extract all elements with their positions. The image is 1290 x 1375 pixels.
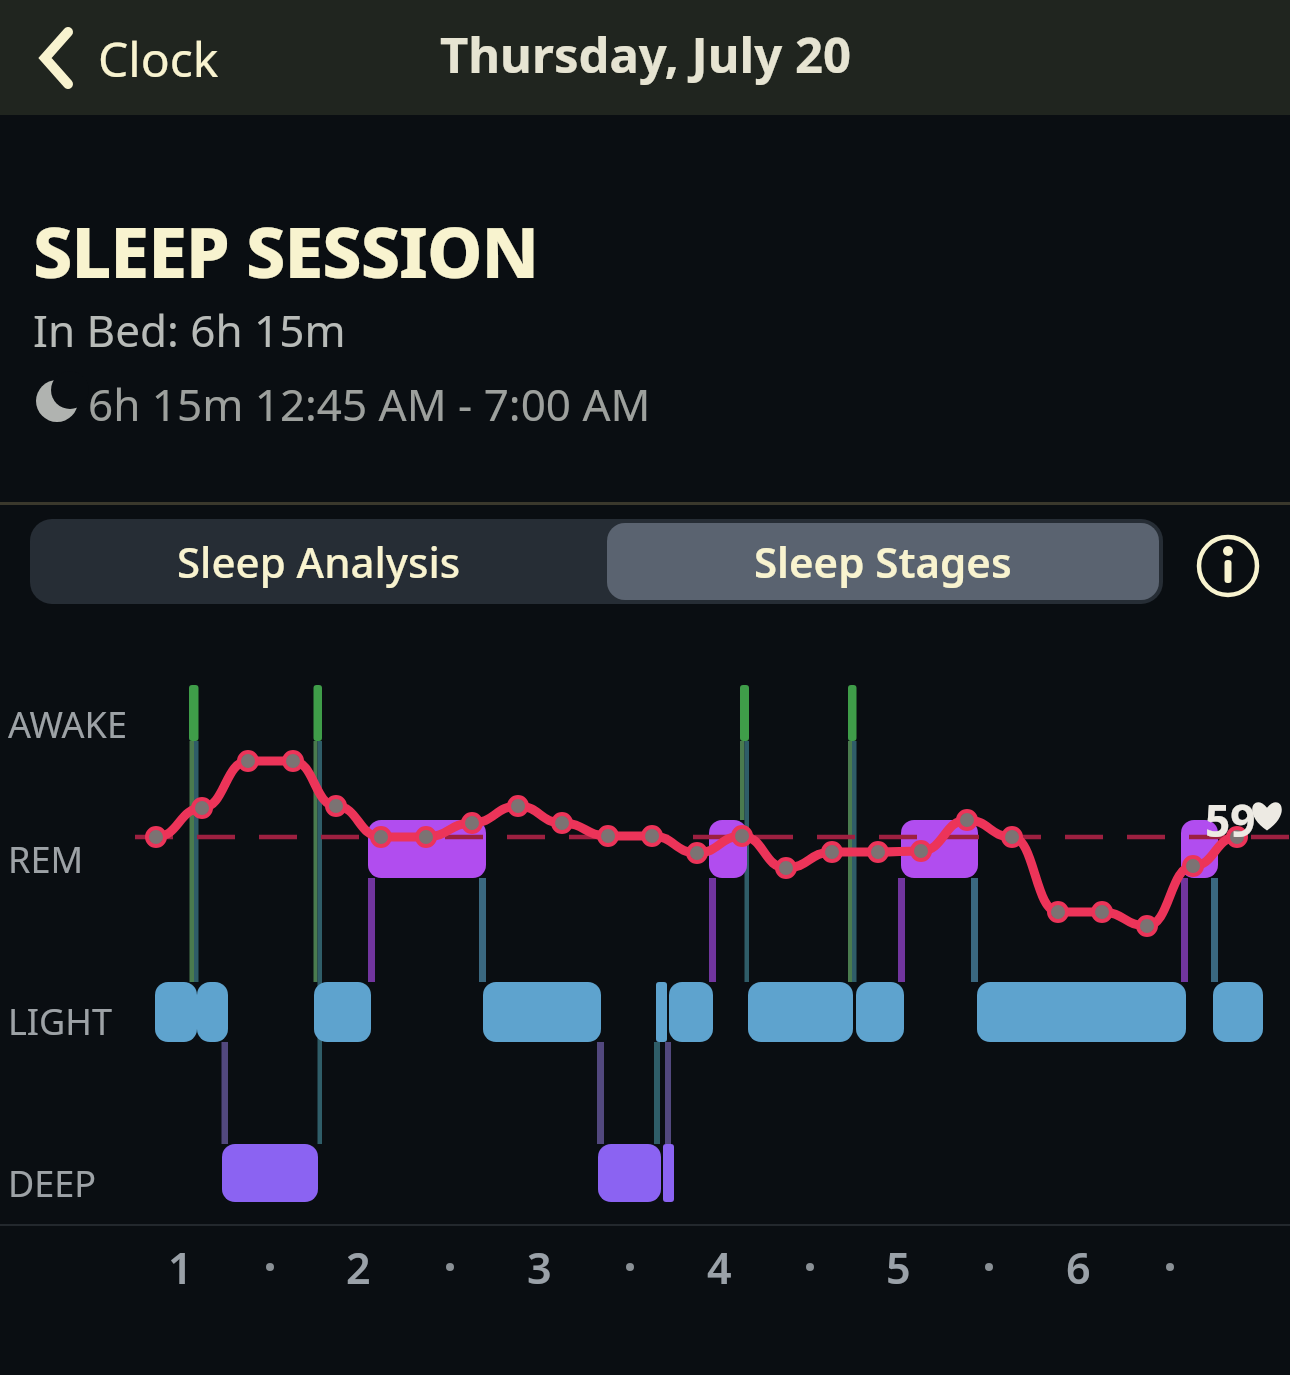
staticText: LIGHT — [8, 997, 112, 1046]
staticText: 5 — [886, 1238, 911, 1297]
staticText: REM — [8, 835, 84, 884]
staticText: 2 — [346, 1238, 371, 1297]
staticText: In Bed: 6h 15m — [33, 300, 346, 360]
staticText: Sleep Stages — [754, 533, 1012, 590]
button[interactable]: Sleep Analysis — [30, 519, 607, 604]
staticText: AWAKE — [8, 700, 127, 749]
staticText: Thursday, July 20 — [440, 21, 851, 88]
staticText: SLEEP SESSION — [33, 203, 539, 298]
button[interactable]: Sleep Stages — [607, 523, 1159, 600]
staticText: 3 — [527, 1238, 552, 1297]
button[interactable] — [1192, 530, 1264, 602]
button[interactable]: Clock — [36, 18, 276, 98]
staticText: 6h 15m 12:45 AM - 7:00 AM — [88, 374, 651, 434]
staticText: Clock — [98, 26, 219, 91]
staticText: 59 — [1205, 790, 1256, 850]
staticText: 4 — [707, 1238, 732, 1297]
staticText: 6 — [1066, 1238, 1091, 1297]
staticText: DEEP — [8, 1159, 97, 1208]
staticText: 1 — [168, 1238, 193, 1297]
staticText: Sleep Analysis — [177, 533, 461, 590]
